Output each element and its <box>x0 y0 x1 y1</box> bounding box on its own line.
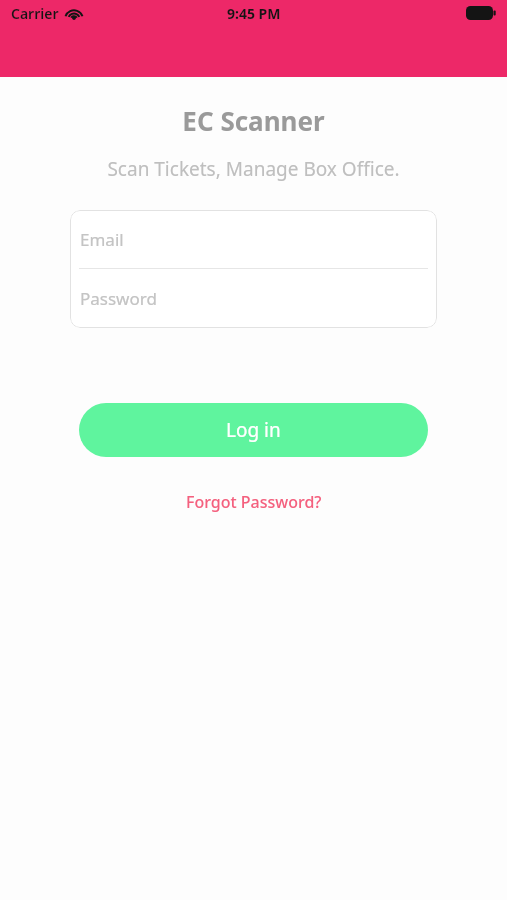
button[interactable]: Password <box>70 269 437 328</box>
staticText: Forgot Password? <box>186 491 322 513</box>
staticText: Email <box>80 228 124 251</box>
button[interactable]: Log in <box>79 403 428 457</box>
other: Battery full <box>466 6 496 20</box>
staticText: Scan Tickets, Manage Box Office. <box>107 156 400 182</box>
staticText: 9:45 PM <box>227 4 281 23</box>
button[interactable]: Forgot Password? <box>174 487 334 517</box>
staticText: Password <box>80 287 157 310</box>
staticText: Log in <box>226 417 281 443</box>
staticText: EC Scanner <box>182 103 325 138</box>
other: Wi-Fi signal <box>65 7 83 20</box>
staticText: Carrier <box>11 4 59 23</box>
button[interactable]: Email <box>70 210 437 268</box>
